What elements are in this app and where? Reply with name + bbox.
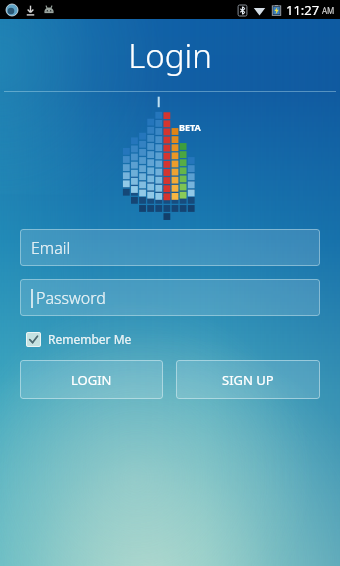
staticText: Email (31, 237, 71, 259)
staticText: Password (36, 287, 106, 309)
button[interactable]: Email (20, 229, 320, 266)
staticText: 11:27 (286, 1, 320, 19)
staticText: Remember Me (48, 331, 132, 347)
staticText: Login (128, 33, 212, 78)
button[interactable]: SIGN UP (176, 360, 320, 399)
button[interactable]: LOGIN (20, 360, 163, 399)
button[interactable]: Password (20, 279, 320, 316)
button[interactable]: Remember Me (24, 329, 134, 349)
staticText: BETA (179, 121, 201, 133)
staticText: SIGN UP (222, 371, 274, 389)
staticText: LOGIN (71, 371, 112, 389)
staticText: AM (322, 5, 335, 16)
